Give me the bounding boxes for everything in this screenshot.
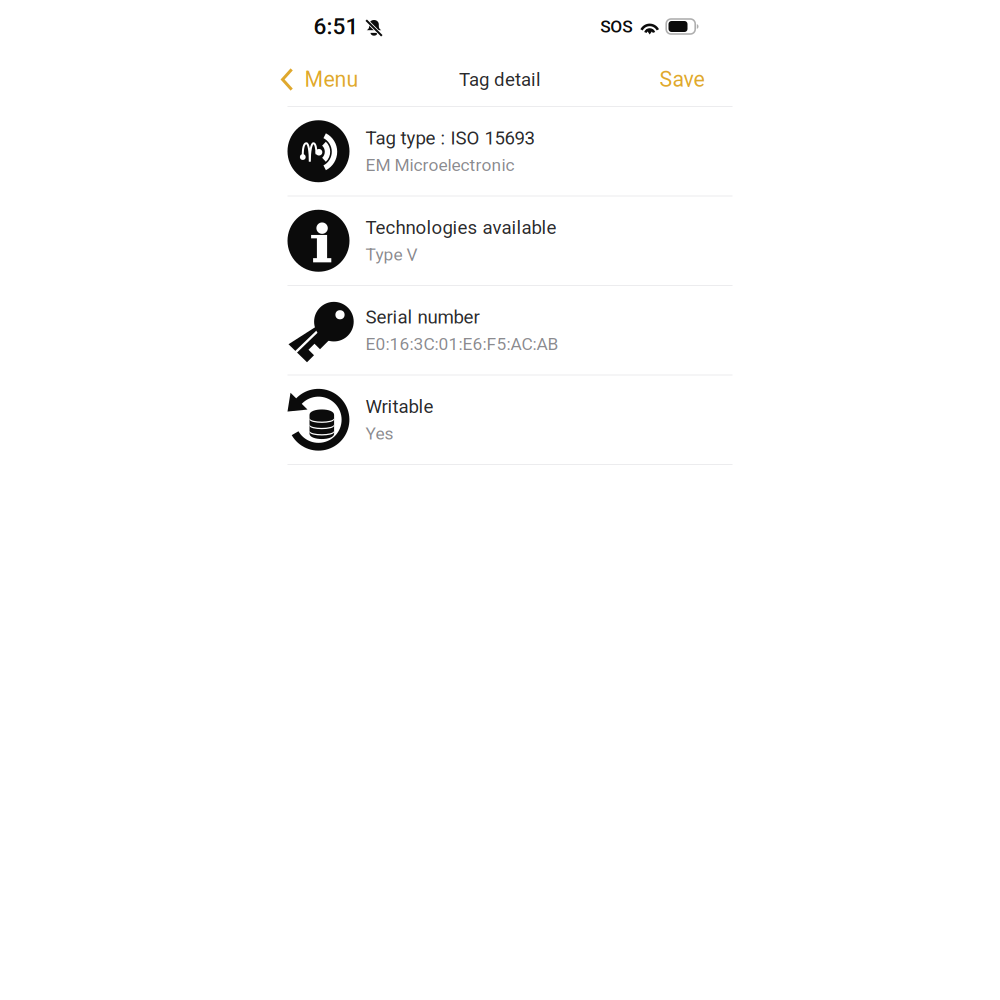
button[interactable]: Technologies available <box>287 196 732 286</box>
button[interactable]: Tag type : ISO 15693 <box>287 107 732 196</box>
staticText: Type V <box>365 244 417 265</box>
staticText: SOS <box>600 16 632 37</box>
staticText: Tag type : ISO 15693 <box>365 127 534 149</box>
button[interactable]: Serial number <box>287 286 732 375</box>
button[interactable]: Menu <box>279 57 358 101</box>
staticText: Yes <box>365 423 393 444</box>
staticText: Save <box>659 67 704 92</box>
staticText: Menu <box>304 67 358 92</box>
staticText: Writable <box>365 396 433 418</box>
button[interactable]: Save <box>659 57 724 101</box>
staticText: E0:16:3C:01:E6:F5:AC:AB <box>365 334 558 354</box>
button[interactable]: Writable <box>287 375 732 465</box>
staticText: Tag detail <box>459 69 541 90</box>
staticText: Serial number <box>365 306 479 328</box>
staticText: 6:51 <box>313 13 358 40</box>
staticText: EM Microelectronic <box>365 155 514 175</box>
staticText: Technologies available <box>365 217 556 239</box>
